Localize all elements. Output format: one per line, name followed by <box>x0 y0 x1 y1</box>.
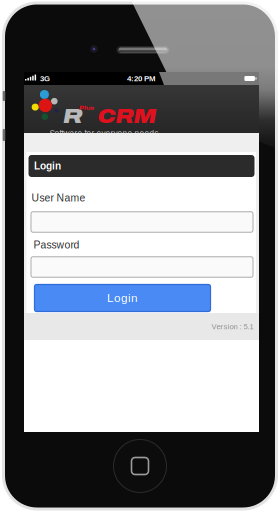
staticText: Software for everyone needs <box>49 129 158 138</box>
staticText: User Name <box>31 192 85 204</box>
staticText: Version : 5.1 <box>211 322 253 331</box>
staticText: Login <box>107 291 138 304</box>
staticText: R <box>63 105 82 127</box>
staticText: 3G <box>40 74 50 83</box>
button[interactable]: Login <box>34 284 210 311</box>
staticText: CRM <box>97 106 156 127</box>
staticText: 4:20 PM <box>127 74 156 83</box>
staticText: Login <box>34 160 61 172</box>
staticText: Plus <box>79 105 94 111</box>
staticText: Password <box>33 239 79 251</box>
button[interactable]: Login <box>28 155 254 177</box>
